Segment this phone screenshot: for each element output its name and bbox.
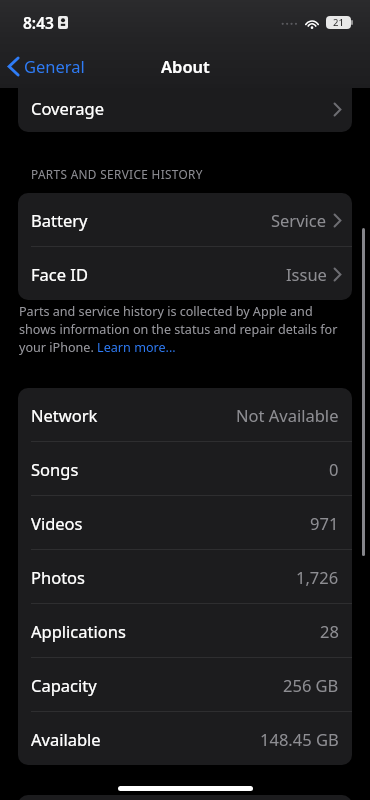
button[interactable]: Capacity — [18, 658, 352, 711]
staticText: 8:43 — [23, 12, 54, 33]
button[interactable]: Available — [18, 712, 352, 765]
button[interactable]: Applications — [18, 604, 352, 657]
staticText: 1,726 — [296, 566, 339, 588]
button[interactable]: Face ID — [18, 247, 352, 300]
staticText: Photos — [31, 566, 86, 588]
button[interactable]: Coverage — [18, 76, 352, 132]
button[interactable]: Battery — [18, 193, 352, 246]
button[interactable]: Back to General — [0, 49, 93, 83]
button[interactable]: Videos — [18, 496, 352, 549]
staticText: Not Available — [236, 404, 339, 426]
other: Back to General — [8, 57, 19, 76]
button[interactable]: Songs — [18, 442, 352, 495]
staticText: Parts and service history is collected b… — [19, 303, 350, 356]
staticText: 256 GB — [283, 674, 339, 696]
staticText: Issue — [286, 263, 327, 285]
staticText: About — [161, 55, 210, 77]
staticText: Videos — [31, 512, 83, 534]
staticText: Applications — [31, 620, 126, 642]
button[interactable]: Network — [18, 388, 352, 441]
staticText: Coverage — [31, 97, 104, 119]
staticText: 28 — [320, 620, 339, 642]
staticText: Service — [271, 209, 327, 231]
staticText: Face ID — [31, 263, 88, 285]
staticText: General — [24, 55, 85, 77]
staticText: PARTS AND SERVICE HISTORY — [31, 166, 203, 182]
staticText: 21 — [333, 16, 344, 29]
staticText: Capacity — [31, 674, 97, 696]
staticText: 971 — [310, 512, 339, 534]
staticText: Battery — [31, 209, 88, 231]
staticText: Available — [31, 728, 101, 750]
staticText: Songs — [31, 458, 79, 480]
staticText: 0 — [329, 458, 339, 480]
button[interactable]: Photos — [18, 550, 352, 603]
staticText: 148.45 GB — [260, 728, 339, 750]
staticText: Network — [31, 404, 98, 426]
